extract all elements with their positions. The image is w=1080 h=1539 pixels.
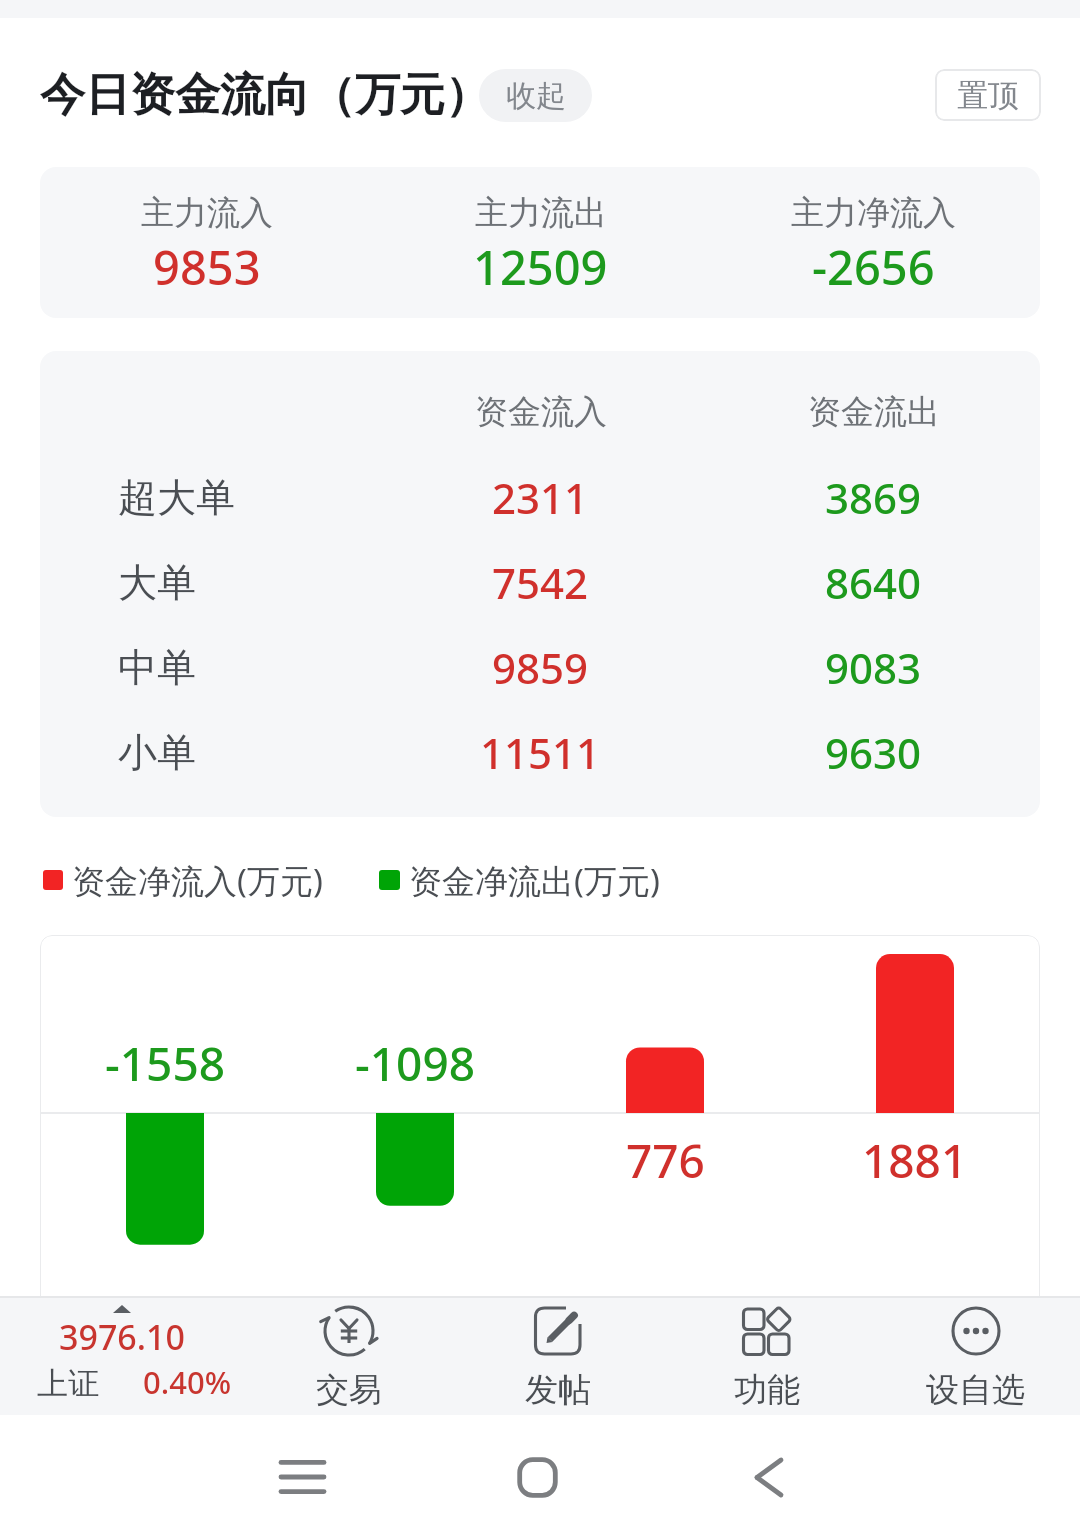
staticText: -1098 [355,1032,476,1095]
staticText: 资金净流入(万元) [72,858,323,903]
button[interactable]: Back [689,1415,849,1539]
staticText: 9853 [153,235,261,299]
staticText: 主力流出 [475,192,607,234]
button[interactable]: Home [457,1415,617,1539]
staticText: 3869 [825,469,922,526]
button[interactable]: Recent apps [222,1415,382,1539]
staticText: 小单 [118,728,196,777]
button[interactable]: 3976.10 [0,1296,244,1415]
staticText: 8640 [825,554,922,611]
staticText: 资金流入 [475,391,607,433]
staticText: 9630 [825,724,922,781]
staticText: 9083 [825,639,922,696]
staticText: 7542 [492,554,589,611]
button[interactable]: 置顶 [935,69,1041,121]
staticText: 收起 [506,77,566,115]
staticText: 设自选 [926,1369,1025,1411]
staticText: 11511 [480,724,601,781]
button[interactable]: 发帖 [453,1296,662,1415]
button[interactable]: 交易 [244,1296,453,1415]
staticText: 功能 [734,1369,800,1411]
staticText: 置顶 [957,76,1019,115]
staticText: 3976.10 [59,1314,185,1360]
staticText: 资金流出 [808,391,940,433]
staticText: -2656 [812,235,935,299]
staticText: 9859 [492,639,589,696]
staticText: 发帖 [525,1369,591,1411]
staticText: 中单 [118,643,196,692]
staticText: -1558 [105,1032,226,1095]
staticText: 上证 [37,1364,99,1403]
staticText: 今日资金流向（万元） [40,67,490,124]
staticText: 12509 [473,235,608,299]
staticText: 776 [626,1129,705,1192]
staticText: 资金净流出(万元) [409,858,660,903]
staticText: 2311 [492,469,589,526]
staticText: 大单 [118,558,196,607]
staticText: 交易 [316,1369,382,1411]
staticText: 1881 [862,1129,968,1192]
button[interactable]: 设自选 [871,1296,1080,1415]
staticText: 超大单 [118,473,235,522]
staticText: 主力流入 [141,192,273,234]
staticText: 0.40% [143,1361,232,1403]
button[interactable]: 收起 [479,69,592,122]
staticText: 主力净流入 [791,192,956,234]
button[interactable]: 功能 [662,1296,871,1415]
